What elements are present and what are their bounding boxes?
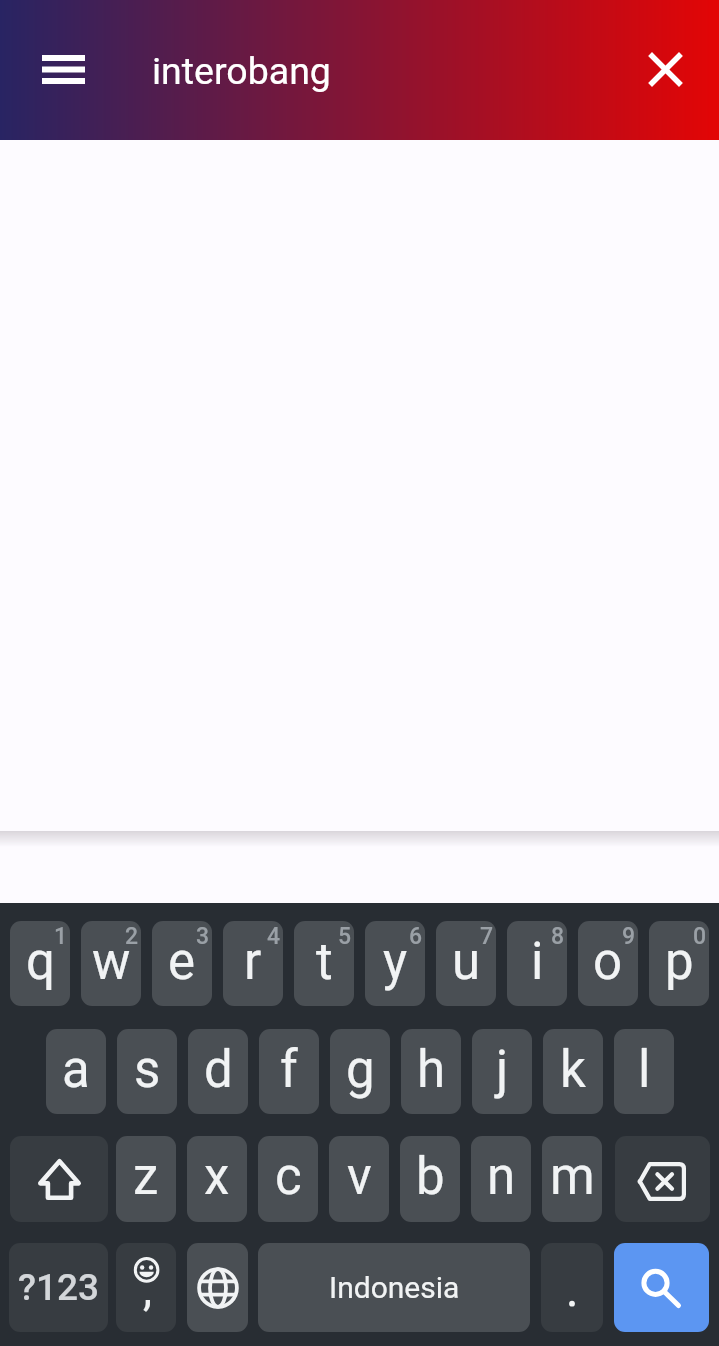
staticText: k [560,1040,586,1100]
button[interactable]: Indonesia [258,1243,530,1332]
staticText: 2 [125,923,139,950]
staticText: x [204,1147,230,1207]
staticText: 7 [480,923,494,950]
staticText: o [593,932,623,992]
button[interactable]: t [294,921,354,1006]
button[interactable]: a [46,1029,106,1114]
staticText: v [347,1147,372,1207]
staticText: n [487,1147,516,1207]
staticText: 1 [54,923,68,950]
button[interactable]: Change language [187,1243,248,1332]
staticText: d [204,1040,233,1100]
staticText: interobang [152,49,331,93]
button[interactable]: u [436,921,496,1006]
button[interactable]: y [365,921,425,1006]
button[interactable]: k [543,1029,603,1114]
button[interactable]: r [223,921,283,1006]
button[interactable]: w [81,921,141,1006]
staticText: 0 [693,923,707,950]
staticText: u [452,932,481,992]
staticText: e [168,932,196,992]
staticText: 6 [409,923,423,950]
staticText: j [496,1040,509,1100]
button[interactable]: l [614,1029,674,1114]
button[interactable]: z [116,1136,176,1222]
staticText: z [133,1147,159,1207]
staticText: f [280,1040,298,1100]
staticText: m [550,1147,595,1207]
staticText: r [244,932,262,992]
staticText: a [62,1040,90,1100]
staticText: l [638,1040,651,1100]
button[interactable]: Menu [28,47,98,91]
button[interactable]: j [472,1029,532,1114]
staticText: q [26,932,55,992]
staticText: i [531,932,544,992]
staticText: 8 [551,923,565,950]
button[interactable]: b [400,1136,460,1222]
staticText: 5 [338,923,352,950]
button[interactable]: Close [634,47,697,91]
staticText: p [665,932,694,992]
button[interactable]: s [117,1029,177,1114]
button[interactable]: Period [541,1243,603,1332]
staticText: g [346,1040,375,1100]
button[interactable]: ?123 [9,1243,108,1332]
button[interactable]: g [330,1029,390,1114]
button[interactable]: n [471,1136,531,1222]
button[interactable]: x [187,1136,247,1222]
staticText: y [383,932,408,992]
staticText: s [134,1040,161,1100]
staticText: 3 [196,923,210,950]
staticText: h [417,1040,446,1100]
button[interactable]: o [578,921,638,1006]
staticText: , [143,1262,153,1316]
button[interactable]: d [188,1029,248,1114]
button[interactable]: h [401,1029,461,1114]
button[interactable]: e [152,921,212,1006]
button[interactable]: c [258,1136,318,1222]
staticText: 9 [622,923,636,950]
button[interactable]: p [649,921,709,1006]
button[interactable]: m [542,1136,602,1222]
button[interactable]: Search [614,1243,709,1332]
staticText: ?123 [18,1266,100,1309]
staticText: c [275,1147,302,1207]
button[interactable]: Emoji [116,1243,176,1332]
button[interactable]: Shift [10,1136,108,1222]
staticText: t [316,932,333,992]
button[interactable]: q [10,921,70,1006]
button[interactable]: v [329,1136,389,1222]
staticText: b [416,1147,445,1207]
staticText: 4 [267,923,281,950]
button[interactable]: i [507,921,567,1006]
button[interactable]: f [259,1029,319,1114]
staticText: w [92,932,131,992]
button[interactable]: Backspace [615,1136,710,1222]
staticText: Indonesia [329,1270,460,1305]
